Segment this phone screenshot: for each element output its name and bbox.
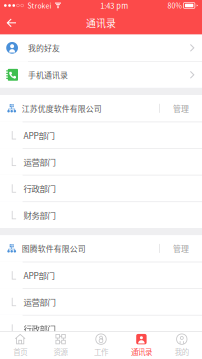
staticText: 江苏优度软件有限公司 — [22, 103, 102, 114]
staticText: 手机通讯录 — [28, 69, 68, 80]
button[interactable]: 行政部门 — [0, 315, 202, 341]
button[interactable]: 资源 — [40, 332, 81, 359]
staticText: 行政部门 — [23, 182, 55, 195]
staticText: 资源 — [54, 346, 68, 357]
button[interactable]: Back — [0, 11, 23, 35]
button[interactable]: APP部门 — [0, 262, 202, 288]
button[interactable]: 我的好友 — [0, 35, 202, 61]
staticText: 1:43 pm — [100, 0, 128, 11]
staticText: 工作 — [94, 346, 108, 357]
button[interactable]: 我的 — [162, 332, 202, 359]
button[interactable]: 手机通讯录 — [0, 62, 202, 88]
staticText: 通讯录 — [131, 346, 152, 357]
staticText: 运营部门 — [23, 156, 55, 168]
staticText: 管理 — [173, 243, 189, 254]
staticText: 我的好友 — [28, 42, 60, 54]
button[interactable]: 运营部门 — [0, 288, 202, 315]
button[interactable]: 管理 — [160, 95, 202, 122]
staticText: 管理 — [173, 103, 189, 114]
staticText: 图腾软件有限公司 — [22, 243, 86, 254]
staticText: 80% — [168, 0, 182, 10]
staticText: 财务部门 — [23, 209, 55, 221]
staticText: 我的 — [175, 346, 189, 357]
staticText: 通讯录 — [86, 16, 116, 30]
staticText: Strokei — [27, 0, 51, 10]
button[interactable]: 财务部门 — [0, 201, 202, 228]
staticText: 运营部门 — [23, 296, 55, 308]
button[interactable]: 运营部门 — [0, 148, 202, 175]
staticText: 行政部门 — [23, 322, 55, 335]
button[interactable]: APP部门 — [0, 122, 202, 148]
button[interactable]: 行政部门 — [0, 175, 202, 201]
staticText: 首页 — [13, 346, 27, 357]
button[interactable]: 管理 — [160, 235, 202, 262]
button[interactable]: 通讯录 — [121, 332, 162, 359]
button[interactable]: 财务部门 — [0, 341, 202, 359]
staticText: 财务部门 — [23, 349, 55, 359]
button[interactable]: 首页 — [0, 332, 40, 359]
staticText: APP部门 — [23, 129, 54, 141]
button[interactable]: 工作 — [81, 332, 121, 359]
staticText: APP部门 — [23, 269, 54, 281]
